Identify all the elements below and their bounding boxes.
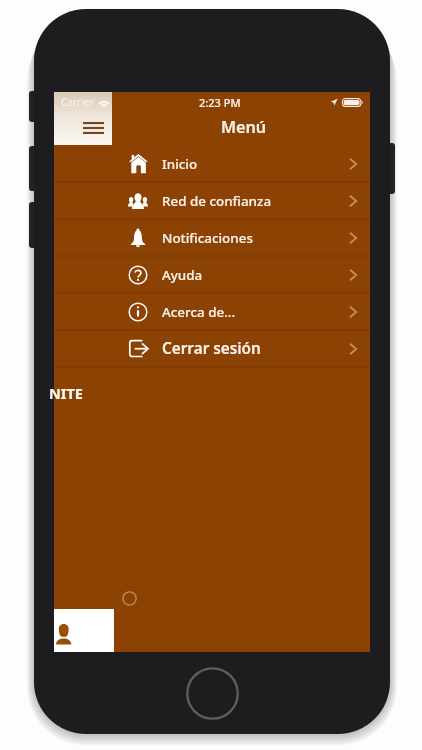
staticText: Carrier — [61, 95, 94, 109]
button[interactable]: Profile — [54, 609, 114, 652]
staticText: Ayuda — [162, 266, 203, 284]
button[interactable]: Cerrar sesión — [54, 331, 370, 368]
staticText: Inicio — [162, 155, 198, 173]
button[interactable]: Notificaciones — [54, 220, 370, 257]
staticText: 2:23 PM — [199, 95, 241, 110]
staticText: Red de confianza — [162, 192, 272, 210]
button[interactable]: Red de confianza — [54, 183, 370, 220]
staticText: Menú — [221, 116, 267, 138]
button[interactable]: Ayuda — [54, 257, 370, 294]
staticText: Notificaciones — [162, 229, 253, 247]
staticText: Acerca de... — [162, 303, 236, 321]
button[interactable]: Inicio — [54, 146, 370, 183]
button[interactable]: Open navigation menu — [54, 92, 112, 145]
staticText: NITE — [49, 383, 83, 403]
button[interactable]: Acerca de... — [54, 294, 370, 331]
staticText: Cerrar sesión — [162, 338, 261, 359]
